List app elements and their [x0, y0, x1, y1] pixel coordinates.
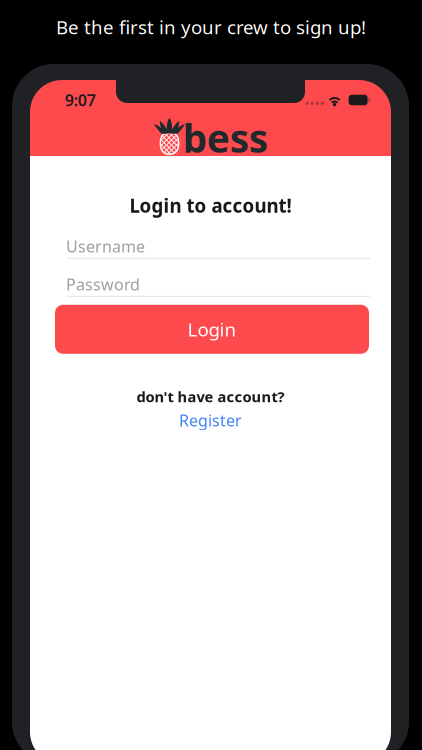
button[interactable]: Register [179, 411, 242, 429]
staticText: Login [187, 317, 236, 342]
staticText: Password [66, 274, 140, 295]
staticText: Be the first in your crew to sign up! [56, 15, 366, 39]
staticText: bess [183, 112, 268, 163]
staticText: don't have account? [136, 387, 284, 406]
staticText: Login to account! [129, 193, 291, 218]
staticText: Register [179, 410, 242, 431]
button[interactable]: Login [55, 305, 369, 354]
staticText: Username [66, 236, 145, 257]
staticText: 9:07 [65, 89, 96, 111]
